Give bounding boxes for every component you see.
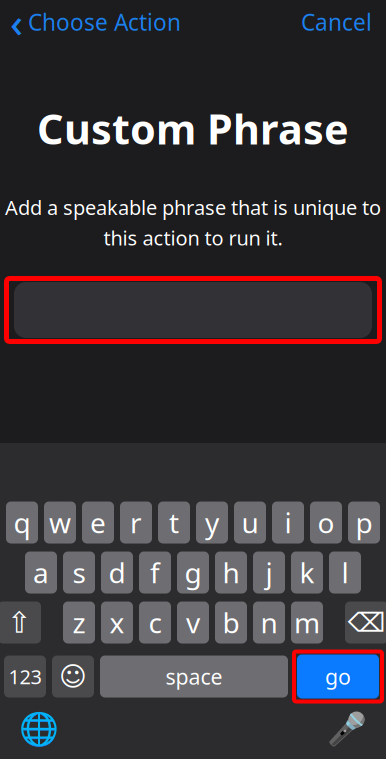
staticText: 🎤 — [327, 711, 367, 748]
button[interactable]: v — [177, 601, 209, 643]
button[interactable]: m — [291, 601, 323, 643]
staticText: z — [72, 604, 85, 641]
staticText: e — [90, 504, 106, 541]
button[interactable]: space — [100, 655, 288, 697]
button[interactable]: k — [291, 551, 323, 593]
button[interactable]: Delete — [345, 601, 386, 643]
staticText: l — [341, 554, 348, 591]
button[interactable]: l — [329, 551, 361, 593]
button[interactable]: u — [234, 501, 266, 543]
staticText: 🌐 — [19, 711, 59, 748]
staticText: m — [294, 604, 320, 641]
staticText: ‹ — [10, 0, 23, 48]
staticText: space — [165, 662, 222, 691]
staticText: Cancel — [301, 7, 372, 37]
staticText: t — [169, 504, 179, 541]
staticText: w — [49, 504, 71, 541]
button[interactable]: j — [253, 551, 285, 593]
staticText: j — [265, 554, 272, 591]
staticText: y — [205, 504, 219, 541]
staticText: d — [108, 554, 125, 591]
staticText: ☺ — [59, 661, 87, 692]
button[interactable]: s — [63, 551, 95, 593]
staticText: p — [355, 504, 372, 541]
staticText: 123 — [8, 663, 41, 690]
button[interactable]: g — [177, 551, 209, 593]
button[interactable]: Emoji — [52, 655, 94, 697]
button[interactable]: Cancel — [287, 0, 386, 44]
staticText: Choose Action — [28, 7, 181, 37]
button[interactable]: a — [25, 551, 57, 593]
button[interactable]: c — [139, 601, 171, 643]
staticText: n — [260, 604, 277, 641]
staticText: k — [299, 554, 314, 591]
staticText: ⌫ — [347, 607, 385, 638]
button[interactable]: n — [253, 601, 285, 643]
staticText: r — [130, 504, 142, 541]
staticText: Custom Phrase — [37, 101, 349, 156]
staticText: ⇧ — [7, 606, 32, 639]
button[interactable]: x — [101, 601, 133, 643]
staticText: f — [150, 554, 160, 591]
button[interactable]: o — [310, 501, 342, 543]
button[interactable]: q — [6, 501, 38, 543]
staticText: i — [284, 504, 291, 541]
button[interactable]: t — [158, 501, 190, 543]
staticText: c — [148, 604, 161, 641]
button[interactable]: ‹ — [0, 0, 189, 44]
button[interactable]: r — [120, 501, 152, 543]
staticText: q — [13, 504, 30, 541]
staticText: v — [186, 604, 200, 641]
staticText: go — [325, 662, 351, 691]
staticText: o — [317, 504, 334, 541]
staticText: a — [33, 554, 49, 591]
button[interactable]: h — [215, 551, 247, 593]
staticText: h — [222, 554, 239, 591]
button[interactable]: z — [63, 601, 95, 643]
staticText: g — [184, 554, 201, 591]
button[interactable]: y — [196, 501, 228, 543]
button[interactable]: Dictation — [322, 707, 372, 751]
button[interactable]: Next keyboard — [14, 707, 64, 751]
button[interactable]: e — [82, 501, 114, 543]
button[interactable]: p — [348, 501, 380, 543]
staticText: u — [241, 504, 258, 541]
button[interactable]: b — [215, 601, 247, 643]
staticText: x — [109, 604, 124, 641]
button[interactable]: i — [272, 501, 304, 543]
button[interactable]: w — [44, 501, 76, 543]
button[interactable]: d — [101, 551, 133, 593]
button[interactable]: Shift — [0, 601, 41, 643]
staticText: this action to run it. — [103, 224, 282, 251]
button[interactable]: go — [294, 651, 382, 701]
staticText: b — [222, 604, 239, 641]
staticText: Add a speakable phrase that is unique to — [5, 194, 381, 220]
button[interactable]: 123 — [4, 655, 46, 697]
button[interactable]: f — [139, 551, 171, 593]
staticText: s — [72, 554, 85, 591]
